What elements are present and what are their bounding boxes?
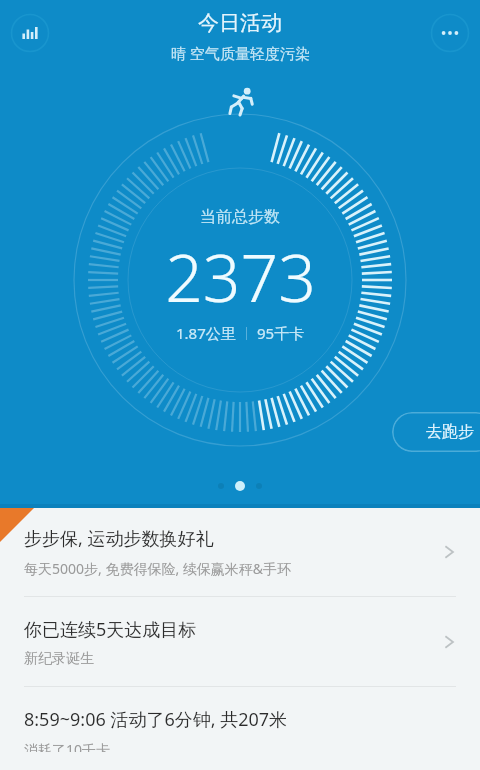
staticText: 当前总步数 — [200, 207, 280, 227]
staticText: 今日活动 — [198, 10, 282, 36]
staticText: 你已连续5天达成目标 — [24, 617, 197, 642]
button[interactable]: 步步保, 运动步数换好礼 — [0, 508, 480, 596]
button[interactable]: More options — [430, 13, 470, 53]
staticText: 步步保, 运动步数换好礼 — [24, 526, 214, 551]
button[interactable]: 你已连续5天达成目标 — [0, 597, 480, 686]
staticText: 8:59~9:06 活动了6分钟, 共207米 — [24, 707, 288, 732]
staticText: 1.87公里 — [176, 323, 236, 343]
staticText: 每天5000步, 免费得保险, 续保赢米秤&手环 — [24, 559, 292, 578]
staticText: 95千卡 — [257, 323, 305, 343]
staticText: 去跑步 — [426, 422, 474, 442]
button[interactable]: 8:59~9:06 活动了6分钟, 共207米 — [0, 687, 480, 770]
staticText: 新纪录诞生 — [24, 650, 94, 668]
staticText: 消耗了10千卡 — [24, 740, 111, 752]
staticText: 2373 — [165, 231, 316, 321]
button[interactable]: 去跑步 — [392, 412, 480, 452]
staticText: 晴 空气质量轻度污染 — [171, 43, 310, 63]
button[interactable]: Statistics — [10, 13, 50, 53]
